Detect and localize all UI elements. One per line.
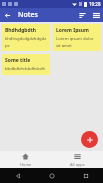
button[interactable]: Lorem Ipsum: [53, 24, 101, 51]
button[interactable]: Home: [35, 168, 69, 183]
staticText: Some title: [5, 57, 31, 64]
staticText: Home: [20, 162, 32, 167]
button[interactable]: Recents: [69, 168, 103, 183]
button[interactable]: Add note: [81, 131, 98, 148]
button[interactable]: Back: [0, 8, 14, 22]
staticText: 19:28: [89, 1, 101, 7]
staticText: Lorem Ipsum: [56, 27, 89, 34]
button[interactable]: Back: [0, 168, 35, 183]
button[interactable]: All apps: [51, 151, 103, 168]
button[interactable]: Home: [0, 151, 51, 168]
staticText: khdhsgdcdgdzhdgdzps: [5, 36, 47, 48]
staticText: Lorem ipsum dolor sit amet: [56, 36, 98, 48]
button[interactable]: Some title: [2, 54, 50, 75]
staticText: Notes: [18, 10, 38, 20]
button[interactable]: Sort: [75, 8, 89, 22]
staticText: All apps: [70, 162, 85, 167]
button[interactable]: Bhdhdgbdth: [2, 24, 50, 51]
staticText: Bhdhdgbdth: [5, 27, 37, 34]
staticText: bbdbdbhcbbdhdcdh: [5, 66, 46, 72]
button[interactable]: Menu: [89, 8, 103, 22]
